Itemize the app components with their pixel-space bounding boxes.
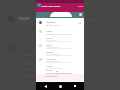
staticText: Create new contact: [41, 5, 61, 8]
staticText: Phone number: [46, 46, 60, 49]
button[interactable]: [36, 36, 84, 43]
button[interactable]: Back: [39, 82, 51, 90]
staticText: Notes: [46, 65, 53, 68]
staticText: Phone: [46, 37, 53, 40]
staticText: Phone: [46, 69, 53, 72]
button[interactable]: [36, 19, 84, 28]
button[interactable]: Add photo: [79, 13, 82, 16]
button[interactable]: [36, 74, 84, 81]
staticText: Google account: [46, 24, 61, 27]
staticText: More fields: [45, 75, 58, 78]
button[interactable]: [36, 64, 84, 71]
button[interactable]: [36, 3, 84, 12]
staticText: SAVE: [78, 5, 83, 8]
button[interactable]: [36, 57, 84, 64]
staticText: Email address: [46, 53, 59, 56]
staticText: Name suffix: [46, 39, 57, 42]
staticText: Saving to: [46, 21, 56, 24]
button[interactable]: [36, 43, 84, 50]
button[interactable]: Home: [54, 82, 66, 90]
button[interactable]: Recents: [69, 82, 81, 90]
staticText: Name: [46, 30, 53, 33]
staticText: Email: [46, 44, 52, 47]
button[interactable]: [36, 29, 84, 36]
staticText: Mobile: [46, 51, 54, 54]
button[interactable]: [36, 50, 84, 57]
staticText: Company: [46, 58, 56, 61]
staticText: Home address: [46, 60, 59, 63]
button[interactable]: Contact photo: [50, 12, 72, 17]
staticText: Job title, department: [46, 67, 65, 70]
